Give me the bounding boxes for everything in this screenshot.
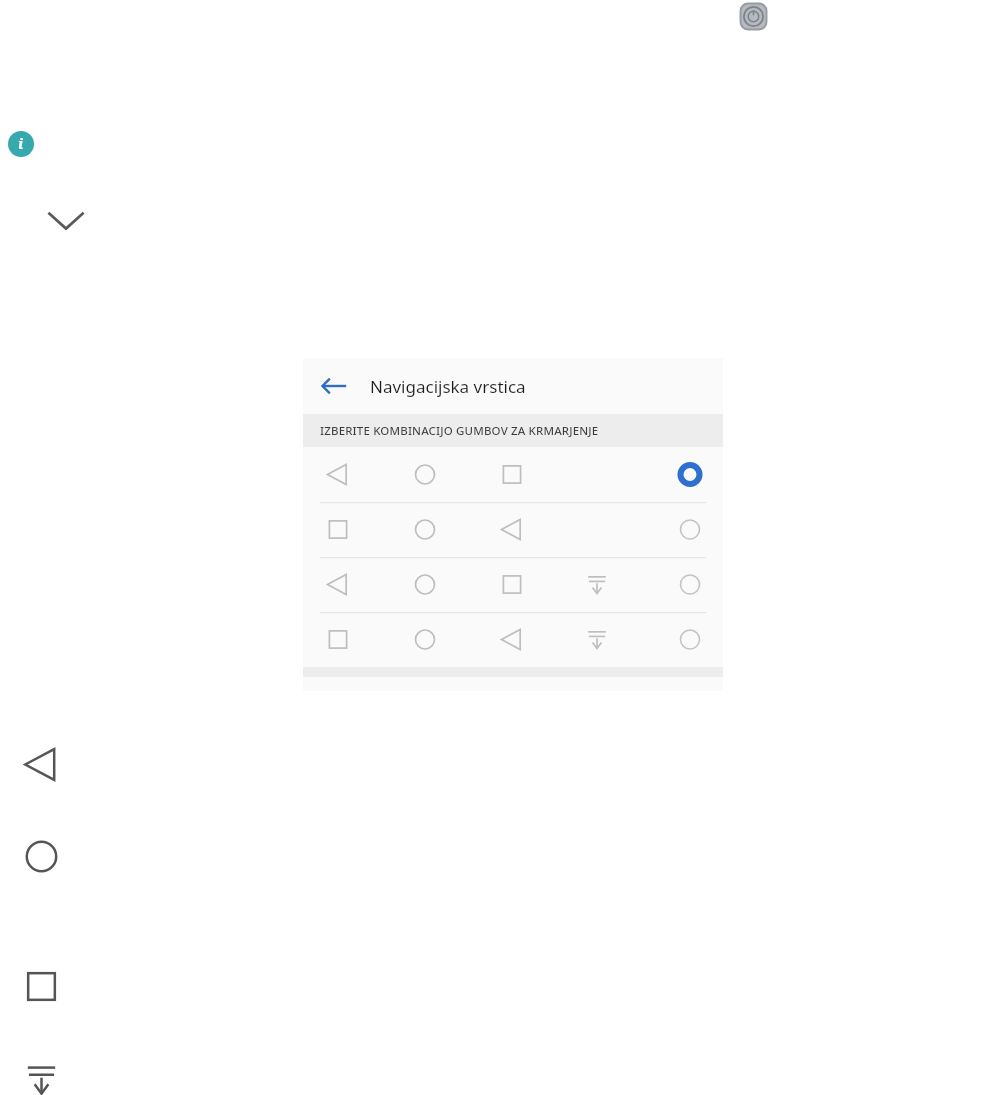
button[interactable]: Expand bbox=[44, 202, 88, 240]
staticText: i bbox=[18, 133, 24, 153]
button[interactable]: Navigate up bbox=[318, 370, 350, 402]
button[interactable] bbox=[303, 557, 723, 612]
button[interactable]: Information bbox=[8, 131, 34, 157]
button[interactable]: Home bbox=[19, 834, 64, 879]
button[interactable] bbox=[303, 502, 723, 557]
button[interactable] bbox=[303, 612, 723, 667]
staticText: IZBERITE KOMBINACIJO GUMBOV ZA KRMARJENJ… bbox=[320, 423, 599, 439]
button[interactable]: Hide navigation bar bbox=[19, 1057, 64, 1095]
button[interactable]: Clock app bbox=[738, 1, 769, 32]
button[interactable]: Back bbox=[19, 742, 64, 787]
button[interactable]: Recent apps bbox=[19, 964, 64, 1009]
button[interactable] bbox=[303, 447, 723, 502]
staticText: Navigacijska vrstica bbox=[370, 375, 526, 398]
